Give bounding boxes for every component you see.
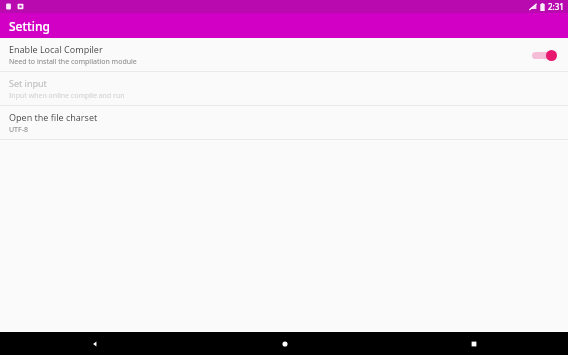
- staticText: Setting: [9, 18, 50, 34]
- staticText: Enable Local Compiler: [9, 43, 103, 55]
- staticText: Open the file charset: [9, 111, 98, 123]
- staticText: Set input: [9, 77, 47, 89]
- button[interactable]: Set input: [0, 72, 568, 105]
- button[interactable]: Enable Local Compiler: [0, 38, 568, 71]
- button[interactable]: Home: [190, 332, 379, 355]
- staticText: Need to install the compilation module: [9, 57, 137, 67]
- button[interactable]: Recent apps: [379, 332, 568, 355]
- staticText: UTF-8: [9, 125, 28, 135]
- button[interactable]: Back: [0, 332, 190, 355]
- button[interactable]: Enable Local Compiler toggle: [528, 47, 558, 63]
- staticText: Input when online compile and run: [9, 91, 125, 101]
- staticText: 2:31: [548, 1, 564, 12]
- button[interactable]: Open the file charset: [0, 106, 568, 139]
